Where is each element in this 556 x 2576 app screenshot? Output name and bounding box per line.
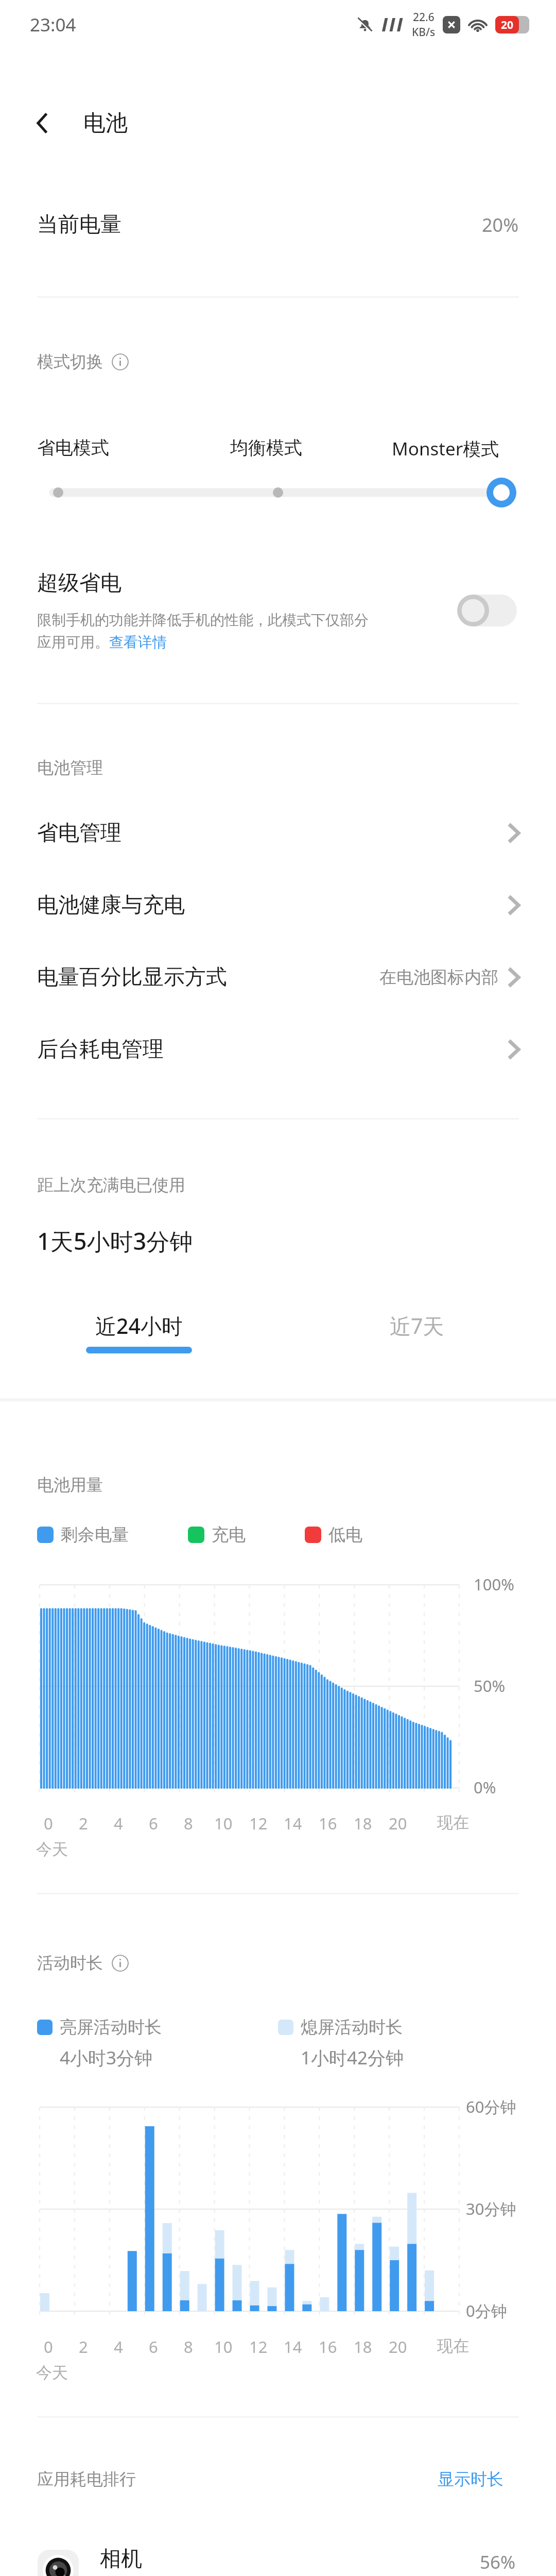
staticText: 20 bbox=[389, 2336, 407, 2358]
staticText: 省电模式 bbox=[37, 436, 109, 459]
staticText: 30分钟 bbox=[466, 2198, 516, 2219]
staticText: 16 bbox=[319, 1812, 337, 1834]
staticText: 4小时3分钟 bbox=[60, 2045, 153, 2070]
button[interactable]: Back bbox=[25, 105, 62, 142]
staticText: 8 bbox=[184, 1812, 193, 1834]
staticText: 电量百分比显示方式 bbox=[37, 964, 227, 991]
staticText: 10 bbox=[214, 1812, 233, 1834]
staticText: 0分钟 bbox=[466, 2300, 507, 2321]
button[interactable]: 显示时长 bbox=[438, 2469, 503, 2489]
staticText: 8 bbox=[184, 2336, 193, 2358]
staticText: 20% bbox=[482, 212, 519, 238]
staticText: 20 bbox=[501, 18, 514, 32]
staticText: 电池 bbox=[83, 109, 128, 137]
staticText: 10 bbox=[214, 2336, 233, 2358]
staticText: Monster模式 bbox=[392, 436, 499, 461]
staticText: 当前电量 bbox=[37, 211, 121, 238]
staticText: 限制手机的功能并降低手机的性能，此模式下仅部分 bbox=[37, 611, 369, 629]
staticText: 1小时42分钟 bbox=[301, 2045, 404, 2070]
staticText: 熄屏活动时长 bbox=[301, 2016, 403, 2038]
staticText: 超级省电 bbox=[37, 570, 121, 597]
staticText: 23:04 bbox=[30, 12, 76, 37]
staticText: 0% bbox=[474, 1776, 496, 1798]
staticText: 20 bbox=[389, 1812, 407, 1834]
staticText: 12 bbox=[249, 1812, 268, 1834]
staticText: 省电管理 bbox=[37, 820, 121, 846]
staticText: 查看详情 bbox=[109, 633, 167, 651]
staticText: 均衡模式 bbox=[230, 436, 302, 459]
staticText: 充电 bbox=[212, 1524, 246, 1546]
staticText: 1天5小时3分钟 bbox=[37, 1225, 193, 1257]
staticText: 亮屏活动时长 bbox=[60, 2016, 162, 2038]
staticText: 12 bbox=[249, 2336, 268, 2358]
staticText: 现在 bbox=[437, 2336, 469, 2356]
staticText: 近7天 bbox=[390, 1311, 444, 1340]
button[interactable]: Super power saving toggle bbox=[457, 595, 517, 626]
staticText: 14 bbox=[284, 1812, 302, 1834]
staticText: 电池健康与充电 bbox=[37, 892, 185, 919]
staticText: 电池管理 bbox=[37, 757, 103, 778]
staticText: 低电 bbox=[328, 1524, 362, 1546]
staticText: 6 bbox=[149, 1812, 158, 1834]
button[interactable]: 省电管理 bbox=[0, 797, 556, 869]
staticText: 剩余电量 bbox=[61, 1524, 129, 1546]
staticText: 今天 bbox=[36, 1839, 68, 1859]
staticText: KB/s bbox=[412, 25, 436, 40]
staticText: 在电池图标内部 bbox=[379, 967, 498, 988]
staticText: 4 bbox=[114, 2336, 123, 2358]
staticText: 距上次充满电已使用 bbox=[37, 1175, 185, 1195]
button[interactable]: 近7天 bbox=[347, 1311, 486, 1353]
staticText: 22.6 bbox=[413, 10, 435, 25]
staticText: 18 bbox=[354, 1812, 372, 1834]
button[interactable]: 相机 bbox=[0, 2528, 556, 2576]
staticText: 模式切换 bbox=[37, 351, 103, 372]
staticText: 100% bbox=[474, 1573, 514, 1595]
button[interactable]: 电池健康与充电 bbox=[0, 869, 556, 941]
staticText: 50% bbox=[474, 1675, 506, 1697]
staticText: 14 bbox=[284, 2336, 302, 2358]
staticText: 电池用量 bbox=[37, 1475, 103, 1495]
staticText: 现在 bbox=[437, 1812, 469, 1833]
staticText: 18 bbox=[354, 2336, 372, 2358]
staticText: 活动时长 bbox=[37, 1953, 103, 1973]
staticText: 0 bbox=[44, 1812, 53, 1834]
staticText: 0 bbox=[44, 2336, 53, 2358]
button[interactable]: 后台耗电管理 bbox=[0, 1013, 556, 1086]
button[interactable]: 电量百分比显示方式 bbox=[0, 941, 556, 1013]
staticText: 16 bbox=[319, 2336, 337, 2358]
staticText: 显示时长 bbox=[438, 2469, 503, 2489]
staticText: 60分钟 bbox=[466, 2096, 516, 2117]
staticText: 今天 bbox=[36, 2363, 68, 2383]
staticText: 近24小时 bbox=[95, 1311, 183, 1340]
staticText: 相机 bbox=[100, 2546, 142, 2572]
button[interactable]: 超级省电 bbox=[0, 562, 556, 665]
staticText: 应用可用。 bbox=[37, 633, 109, 651]
button[interactable]: 近24小时 bbox=[69, 1311, 208, 1353]
button[interactable]: 当前电量 bbox=[0, 191, 556, 259]
staticText: 2 bbox=[79, 1812, 88, 1834]
staticText: 4 bbox=[114, 1812, 123, 1834]
staticText: 后台耗电管理 bbox=[37, 1036, 164, 1063]
staticText: 应用耗电排行 bbox=[37, 2469, 136, 2489]
staticText: 6 bbox=[149, 2336, 158, 2358]
staticText: 56% bbox=[480, 2550, 516, 2574]
staticText: 2 bbox=[79, 2336, 88, 2358]
